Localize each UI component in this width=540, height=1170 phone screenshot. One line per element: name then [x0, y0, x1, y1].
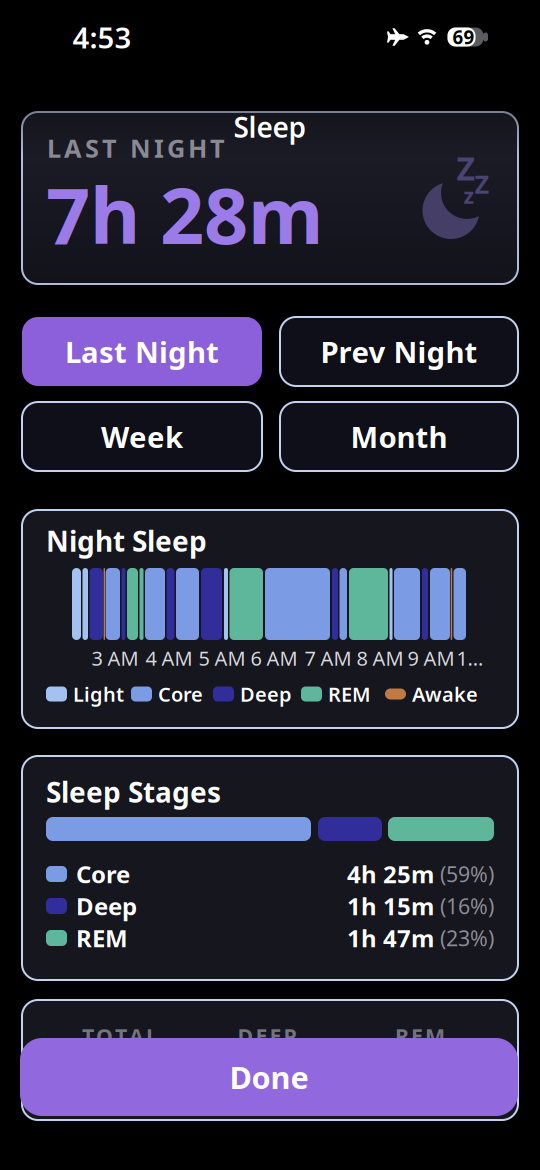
staticText: 4:53: [72, 17, 131, 56]
button[interactable]: Month: [280, 402, 518, 471]
staticText: Sleep: [233, 108, 306, 146]
staticText: 9 AM: [407, 645, 454, 671]
staticText: R E M: [395, 1022, 445, 1050]
staticText: 1h 47m: [347, 922, 434, 954]
staticText: 7h 28m: [46, 163, 323, 265]
staticText: Month: [350, 417, 447, 456]
staticText: Deep: [240, 681, 292, 707]
staticText: 5 AM: [198, 645, 245, 671]
staticText: REM: [76, 922, 128, 954]
staticText: REM: [328, 681, 371, 707]
staticText: Prev Night: [320, 332, 477, 371]
staticText: L A S T N I G H T: [47, 131, 225, 165]
staticText: 7 AM: [304, 645, 351, 671]
staticText: z: [463, 181, 474, 210]
staticText: Z: [474, 167, 489, 201]
staticText: T O T A L: [82, 1022, 158, 1050]
staticText: 4h 25m: [347, 858, 434, 890]
staticText: Core: [76, 858, 130, 890]
staticText: Light: [73, 681, 124, 707]
staticText: 3 AM: [91, 645, 138, 671]
staticText: Week: [101, 417, 183, 456]
staticText: D E E P: [237, 1022, 296, 1050]
staticText: Deep: [76, 890, 137, 922]
staticText: Night Sleep: [46, 522, 207, 560]
staticText: Sleep Stages: [46, 773, 221, 811]
staticText: Awake: [412, 681, 478, 707]
staticText: Last Night: [65, 332, 219, 371]
button[interactable]: Prev Night: [280, 317, 518, 386]
staticText: (16%): [440, 892, 494, 920]
staticText: 8 AM: [356, 645, 403, 671]
staticText: 1…: [456, 645, 483, 671]
staticText: 1h 15m: [347, 890, 434, 922]
staticText: (59%): [440, 860, 494, 888]
staticText: (23%): [440, 924, 494, 952]
staticText: 4 AM: [145, 645, 192, 671]
button[interactable]: Done: [20, 1038, 518, 1116]
staticText: Z: [456, 147, 475, 189]
staticText: 6 AM: [250, 645, 297, 671]
staticText: 69: [452, 25, 474, 49]
staticText: Done: [229, 1057, 308, 1097]
staticText: Core: [158, 681, 203, 707]
button[interactable]: Week: [22, 402, 262, 471]
button[interactable]: Last Night: [22, 317, 262, 386]
